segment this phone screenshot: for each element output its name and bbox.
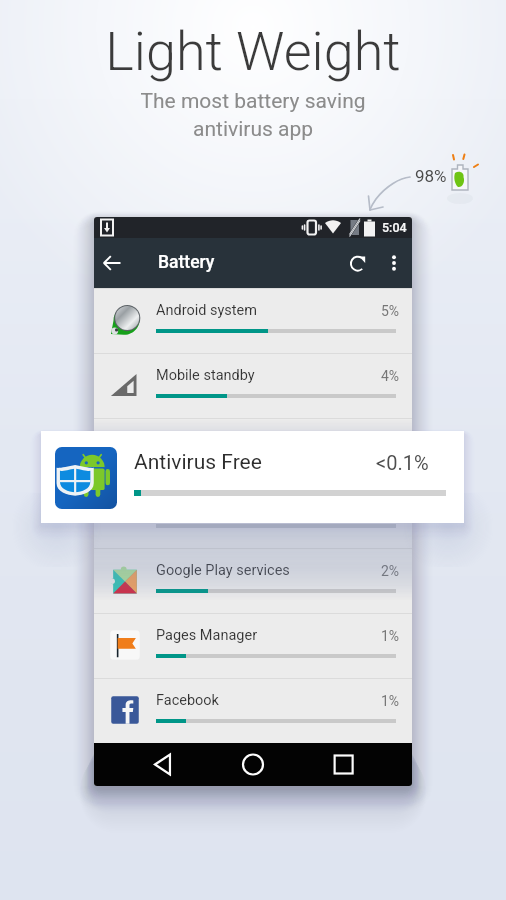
button[interactable]: Antivirus Free bbox=[41, 431, 464, 523]
button[interactable]: Mobile standby bbox=[94, 353, 412, 418]
staticText: 4% bbox=[364, 368, 399, 384]
button[interactable]: Facebook bbox=[94, 678, 412, 743]
staticText: 98% bbox=[415, 166, 447, 186]
staticText: 1% bbox=[364, 693, 399, 709]
button[interactable]: Android system bbox=[94, 288, 412, 353]
staticText: 5% bbox=[364, 303, 399, 319]
staticText: Facebook bbox=[156, 692, 219, 709]
staticText: 2% bbox=[364, 563, 399, 579]
staticText: 1% bbox=[364, 628, 399, 644]
button[interactable]: Google Play services bbox=[94, 548, 412, 613]
staticText: <0.1% bbox=[376, 451, 429, 474]
staticText: Google Play services bbox=[156, 562, 290, 579]
button[interactable]: Back bbox=[96, 247, 128, 279]
button[interactable]: More options bbox=[378, 247, 410, 279]
staticText: Battery bbox=[158, 252, 215, 273]
staticText: Pages Manager bbox=[156, 627, 258, 644]
staticText: Antivirus Free bbox=[134, 450, 262, 475]
button[interactable] bbox=[94, 418, 412, 483]
staticText: Mobile standby bbox=[156, 367, 255, 384]
staticText: 5:04 bbox=[382, 220, 407, 235]
staticText: Android system bbox=[156, 302, 257, 319]
staticText: The most battery saving antivirus app bbox=[140, 89, 366, 141]
button[interactable] bbox=[94, 483, 412, 548]
button[interactable]: Pages Manager bbox=[94, 613, 412, 678]
button[interactable]: Refresh bbox=[341, 247, 373, 279]
staticText: Light Weight bbox=[105, 20, 401, 83]
